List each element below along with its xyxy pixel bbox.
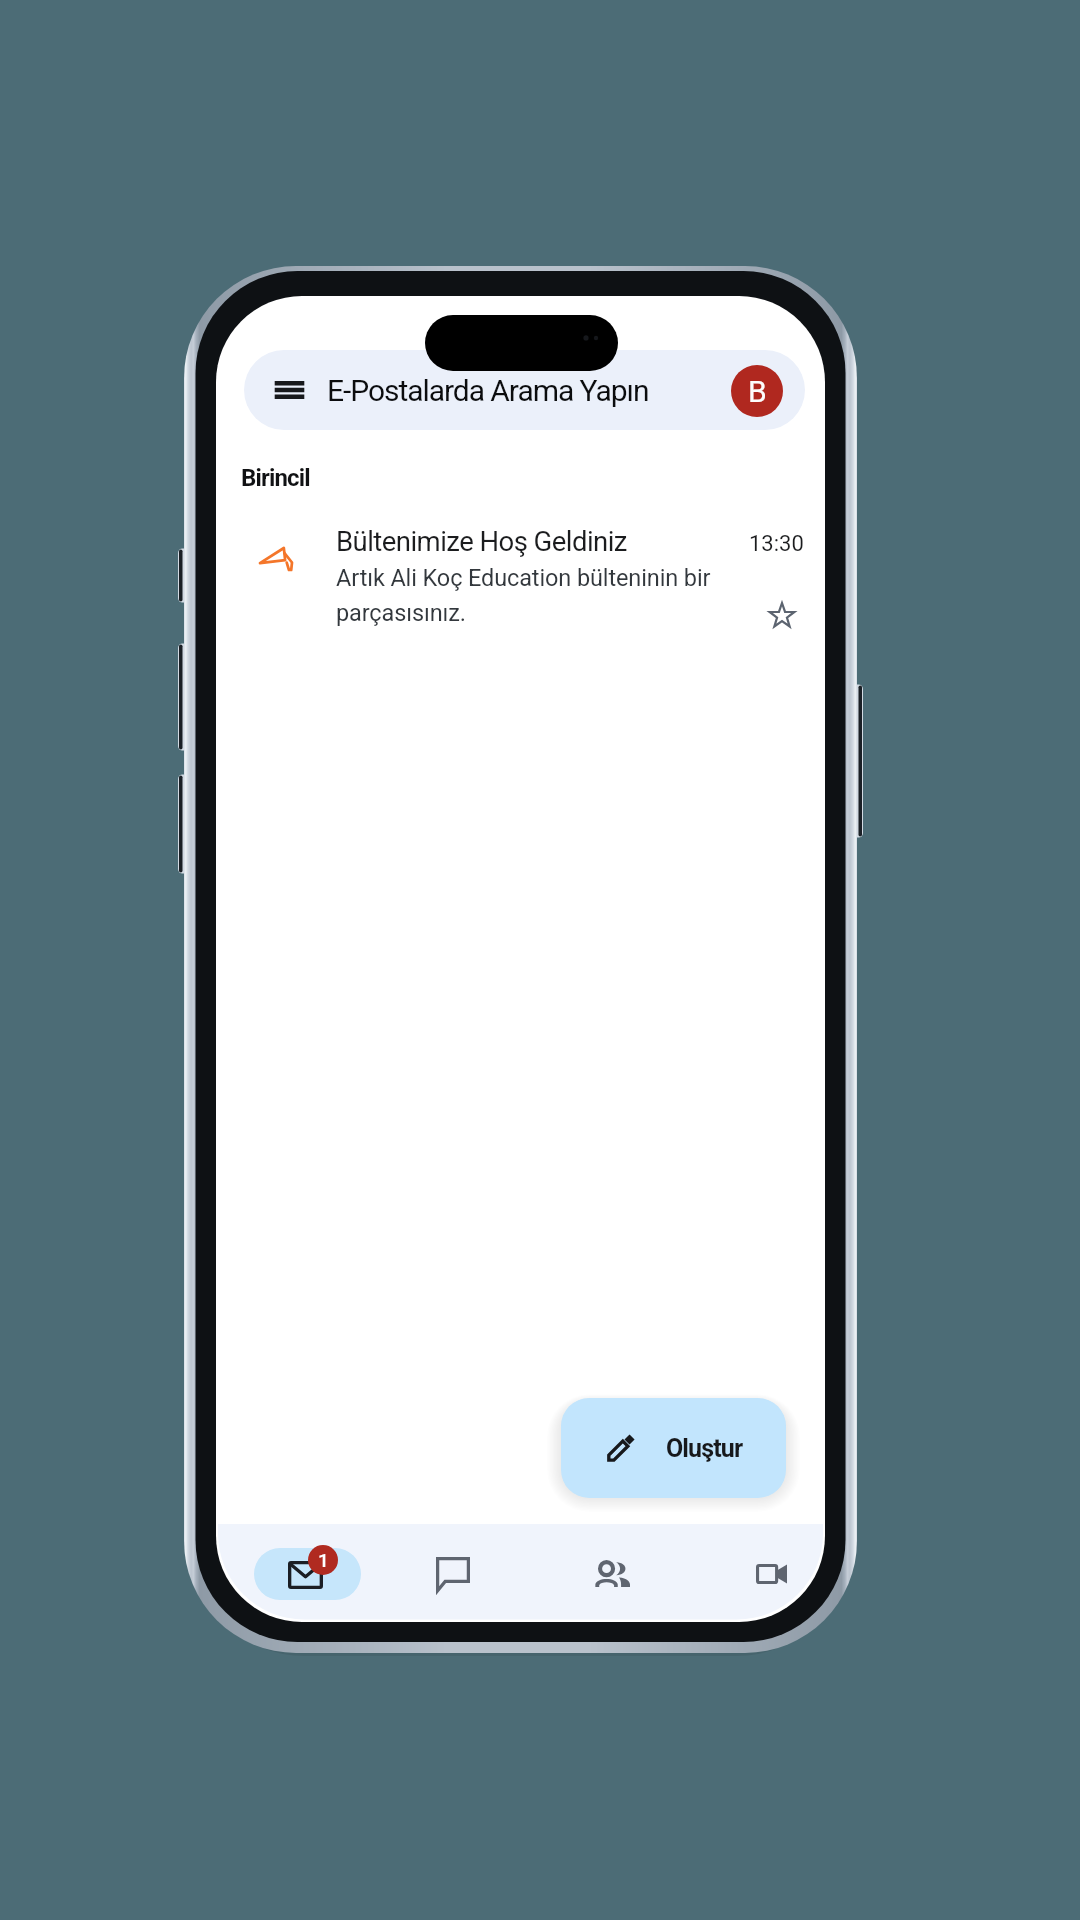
staticText: E-Postalarda Arama Yapın	[327, 373, 649, 408]
button[interactable]: Meet	[737, 1540, 805, 1608]
staticText: 13:30	[749, 531, 804, 557]
staticText: Oluştur	[666, 1434, 743, 1463]
staticText: Artık Ali Koç Education bülteninin bir p…	[336, 564, 728, 627]
staticText: Bültenimize Hoş Geldiniz	[336, 525, 627, 557]
button[interactable]: Bültenimize Hoş Geldiniz	[216, 512, 825, 648]
button[interactable]: Star conversation	[759, 592, 805, 638]
button[interactable]: Spaces	[578, 1540, 646, 1608]
button[interactable]: Chat	[419, 1540, 487, 1608]
button[interactable]: Oluştur	[561, 1398, 786, 1498]
button[interactable]: Open navigation menu	[256, 362, 312, 418]
staticText: 1	[318, 1549, 329, 1571]
button[interactable]: Account	[731, 365, 783, 417]
staticText: Birincil	[241, 464, 310, 492]
staticText: B	[748, 374, 767, 409]
button[interactable]: Open navigation menu	[244, 350, 805, 430]
button[interactable]: Mail, 1 unread	[254, 1548, 361, 1600]
